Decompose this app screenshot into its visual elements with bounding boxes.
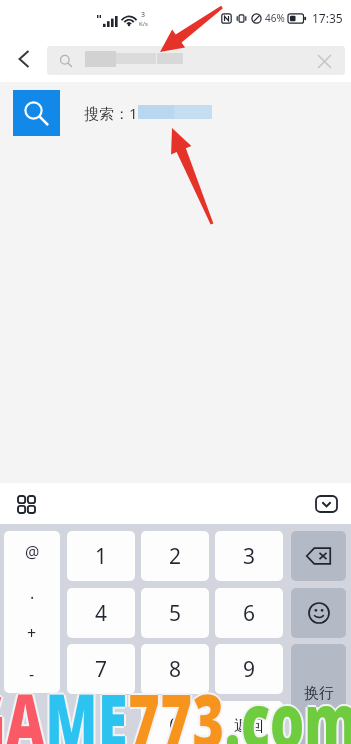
- staticText: 7: [130, 669, 162, 744]
- staticText: 17:35: [312, 10, 343, 26]
- staticText: 46%: [265, 11, 285, 25]
- staticText: +: [27, 622, 37, 644]
- button[interactable]: .: [4, 572, 60, 613]
- button[interactable]: Back: [0, 36, 47, 82]
- staticText: 7: [128, 669, 160, 744]
- button[interactable]: 5: [141, 588, 209, 638]
- staticText: @: [25, 541, 40, 563]
- staticText: 2: [169, 542, 182, 571]
- button[interactable]: 4: [67, 588, 135, 638]
- staticText: 8: [169, 655, 182, 684]
- staticText: m: [304, 671, 343, 744]
- button[interactable]: 9: [215, 644, 283, 694]
- button[interactable]: 返回: [215, 701, 283, 744]
- staticText: A: [8, 669, 47, 744]
- button[interactable]: Emoji: [291, 588, 346, 638]
- staticText: M: [43, 669, 96, 744]
- staticText: 3: [141, 10, 146, 20]
- staticText: 7: [160, 671, 193, 744]
- staticText: M: [45, 667, 98, 744]
- staticText: m: [304, 667, 343, 744]
- staticText: 3: [243, 542, 256, 571]
- button[interactable]: 8: [141, 644, 209, 694]
- staticText: 9: [243, 655, 256, 684]
- staticText: 7: [158, 669, 191, 744]
- staticText: c: [241, 671, 270, 744]
- button[interactable]: 搜索：1: [0, 85, 351, 141]
- staticText: m: [304, 669, 343, 744]
- staticText: 3: [195, 669, 227, 744]
- staticText: o: [270, 671, 304, 744]
- staticText: E: [98, 669, 128, 744]
- staticText: M: [45, 669, 98, 744]
- staticText: .: [223, 669, 239, 744]
- staticText: 7: [126, 669, 158, 744]
- staticText: 3: [193, 667, 225, 744]
- staticText: m: [306, 669, 345, 744]
- staticText: .: [225, 667, 241, 744]
- staticText: c: [243, 669, 272, 744]
- staticText: G: [0, 669, 8, 744]
- button[interactable]: @: [4, 531, 60, 572]
- staticText: A: [6, 669, 45, 744]
- staticText: -: [29, 663, 35, 685]
- staticText: 返回: [234, 717, 264, 736]
- staticText: o: [272, 669, 306, 744]
- staticText: 7: [128, 667, 160, 744]
- staticText: .: [227, 669, 243, 744]
- staticText: 3: [193, 669, 225, 744]
- staticText: E: [96, 669, 126, 744]
- button[interactable]: 6: [215, 588, 283, 638]
- staticText: m: [302, 669, 341, 744]
- staticText: 4: [95, 599, 108, 628]
- staticText: 1: [95, 542, 108, 571]
- staticText: .: [30, 582, 35, 604]
- staticText: 换行: [304, 684, 334, 703]
- staticText: 搜索：1: [84, 103, 138, 123]
- staticText: 7: [95, 655, 108, 684]
- button[interactable]: Clear: [47, 46, 345, 75]
- button[interactable]: Hide keyboard: [310, 488, 342, 520]
- button[interactable]: 7: [67, 644, 135, 694]
- staticText: A: [6, 667, 45, 744]
- staticText: c: [241, 667, 270, 744]
- staticText: 3: [191, 669, 223, 744]
- button[interactable]: +: [4, 612, 60, 653]
- staticText: E: [98, 671, 128, 744]
- staticText: A: [4, 669, 43, 744]
- staticText: G: [0, 667, 6, 744]
- button[interactable]: 2: [141, 531, 209, 581]
- staticText: .: [225, 669, 241, 744]
- staticText: G: [0, 669, 4, 744]
- staticText: E: [98, 667, 128, 744]
- staticText: 7: [160, 667, 193, 744]
- staticText: 7: [128, 671, 160, 744]
- button[interactable]: Clear: [311, 48, 337, 74]
- button[interactable]: 3: [215, 531, 283, 581]
- button[interactable]: Keyboard layouts: [11, 489, 41, 519]
- staticText: .: [225, 671, 241, 744]
- staticText: o: [270, 669, 304, 744]
- button[interactable]: 换行: [291, 644, 346, 744]
- staticText: o: [270, 667, 304, 744]
- staticText: o: [268, 669, 302, 744]
- staticText: c: [239, 669, 268, 744]
- staticText: 5: [169, 599, 182, 628]
- staticText: 7: [162, 669, 195, 744]
- staticText: G: [0, 669, 6, 744]
- staticText: 3: [193, 671, 225, 744]
- staticText: M: [45, 671, 98, 744]
- button[interactable]: -: [4, 653, 60, 693]
- staticText: A: [6, 671, 45, 744]
- button[interactable]: 0: [141, 701, 209, 744]
- button[interactable]: 1: [67, 531, 135, 581]
- staticText: G: [0, 671, 6, 744]
- staticText: M: [47, 669, 100, 744]
- staticText: K/s: [139, 20, 148, 28]
- button[interactable]: Backspace: [291, 531, 346, 581]
- staticText: 7: [160, 669, 193, 744]
- staticText: c: [241, 669, 270, 744]
- staticText: 0: [169, 712, 182, 741]
- staticText: E: [100, 669, 130, 744]
- staticText: 6: [243, 599, 256, 628]
